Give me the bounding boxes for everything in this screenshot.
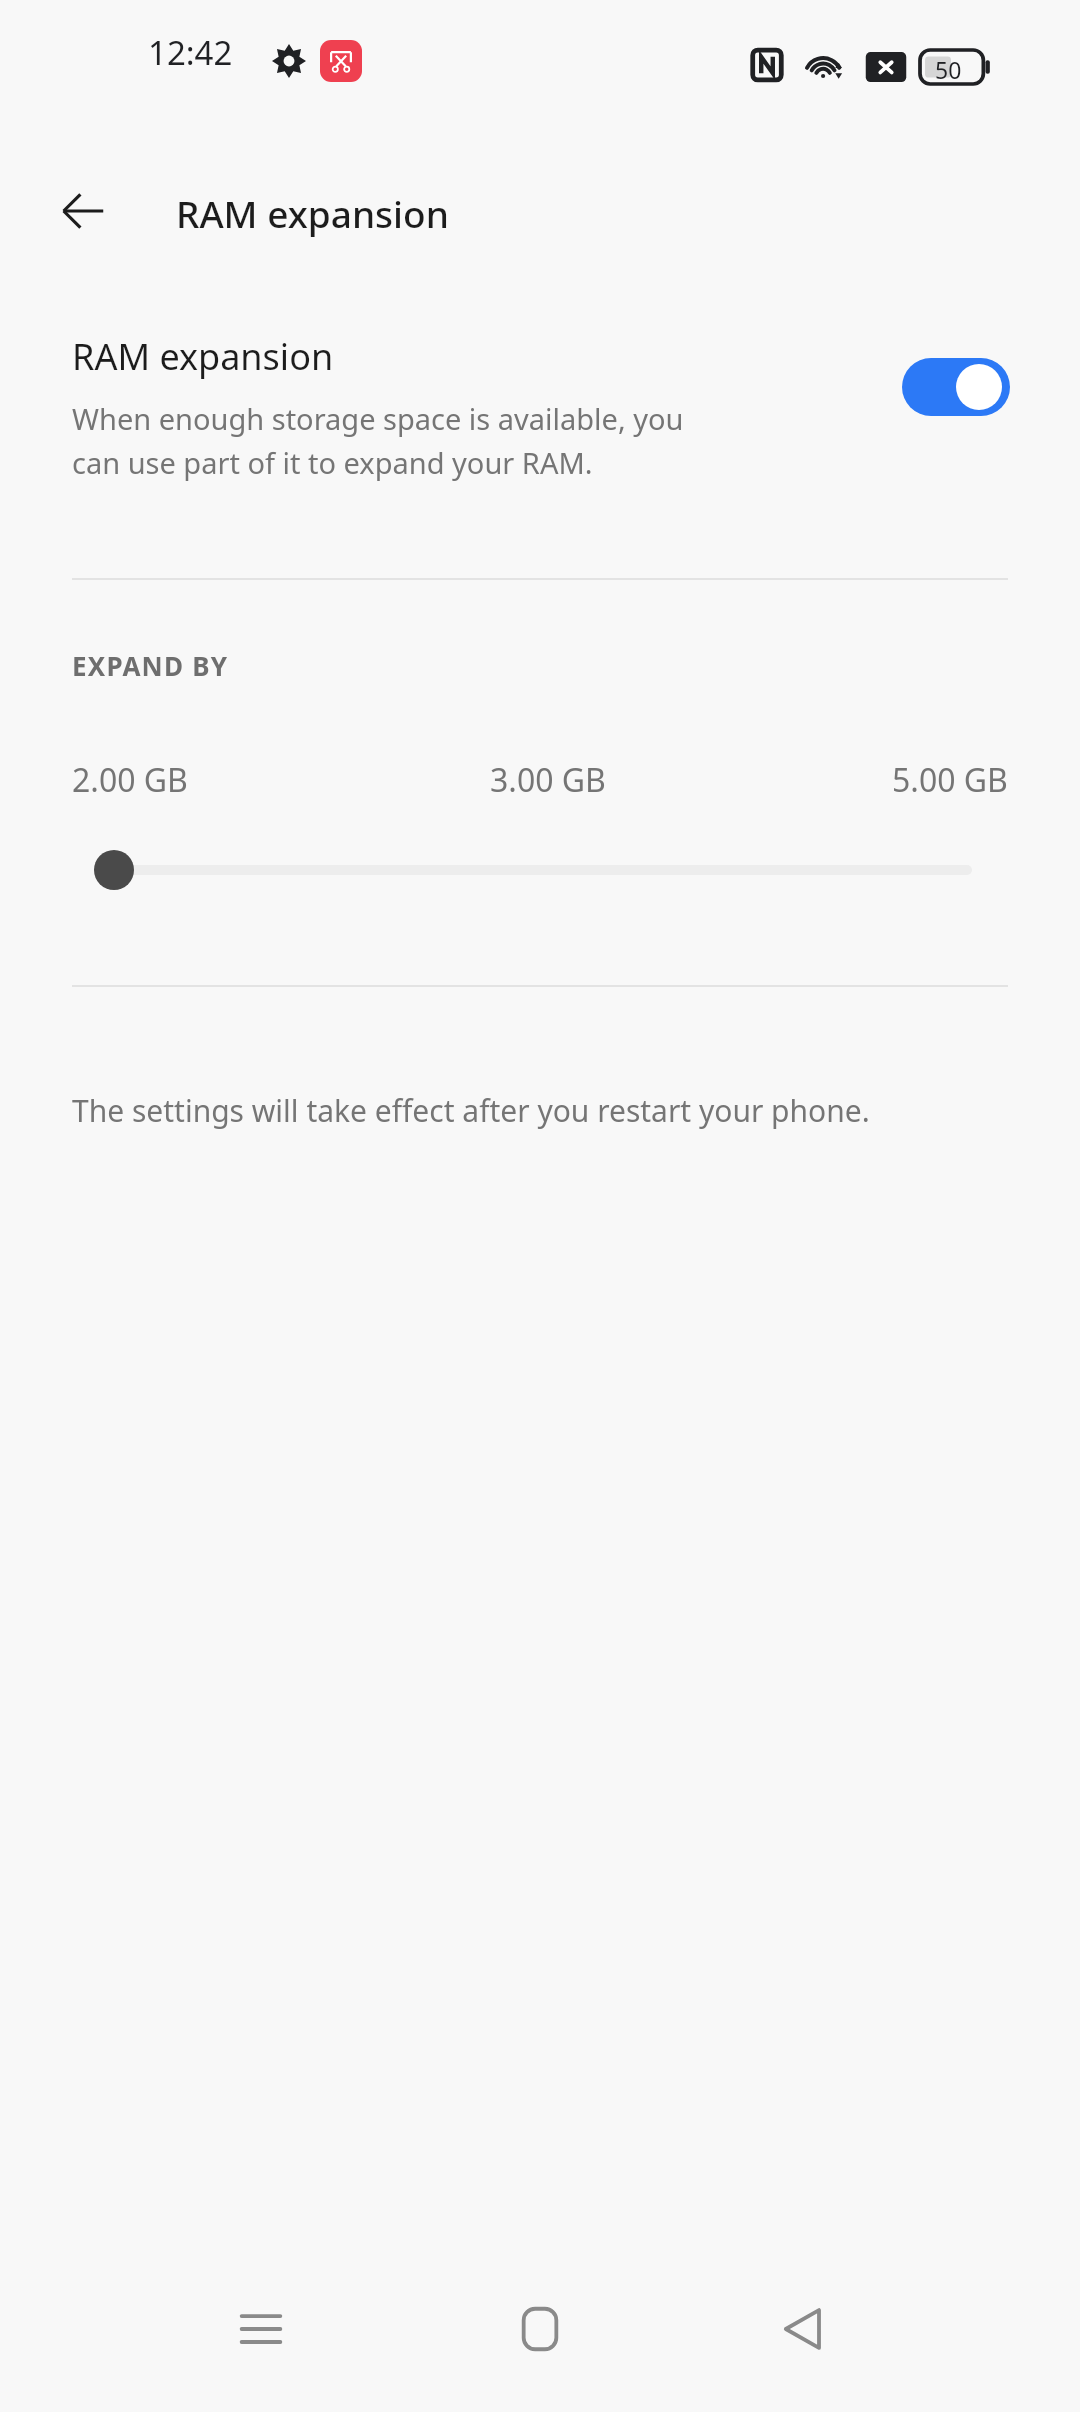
other: Screenshot [320, 40, 362, 82]
button[interactable]: Home [503, 2292, 577, 2366]
button[interactable]: RAM expansion [0, 322, 1080, 552]
button[interactable]: Back [766, 2292, 840, 2366]
button[interactable]: RAM expansion toggle [902, 358, 1010, 416]
staticText: 12:42 [148, 30, 233, 75]
staticText: RAM expansion [176, 188, 449, 238]
staticText: EXPAND BY [72, 648, 229, 683]
staticText: The settings will take effect after you … [72, 1090, 870, 1131]
staticText: 5.00 GB [892, 758, 1008, 802]
staticText: RAM expansion [72, 332, 334, 381]
staticText: When enough storage space is available, … [72, 399, 684, 482]
button[interactable]: Expand by slider [0, 825, 1080, 915]
staticText: 3.00 GB [490, 758, 606, 802]
button[interactable]: Back [46, 174, 120, 248]
staticText: 50 [935, 54, 962, 85]
staticText: 2.00 GB [72, 758, 188, 802]
button[interactable]: Recent apps [224, 2292, 298, 2366]
other: Settings [272, 44, 306, 78]
